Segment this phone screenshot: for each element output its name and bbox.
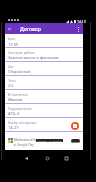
button[interactable]: Save: [71, 122, 79, 130]
staticText: АТЦ-3: [8, 111, 20, 116]
button[interactable]: Открыть: [71, 139, 80, 143]
button[interactable]: Исполнитель: [5, 90, 83, 104]
staticText: 14:12: [77, 19, 86, 24]
staticText: Цех: [8, 65, 14, 69]
button[interactable]: Back: [7, 26, 13, 32]
staticText: Часы: [8, 79, 16, 83]
staticText: Иванов: [8, 97, 23, 102]
staticText: 14-27: [8, 125, 19, 130]
button[interactable]: Home: [41, 152, 53, 164]
staticText: Номер инструкции: [8, 121, 37, 125]
staticText: Подразделение: [8, 107, 32, 111]
staticText: Реклама · Установить: [37, 139, 62, 142]
staticText: Сборочный: [8, 69, 31, 74]
staticText: Договор: [20, 26, 41, 33]
staticText: Описание работы: [8, 51, 35, 55]
button[interactable]: Часы: [5, 76, 83, 90]
staticText: 2.5: [8, 83, 14, 88]
button[interactable]: More options: [74, 25, 82, 33]
staticText: Google Play: [17, 143, 34, 147]
button[interactable]: Дата: [5, 35, 83, 48]
button[interactable]: Back: [20, 152, 32, 164]
button[interactable]: Описание работы: [5, 48, 83, 62]
staticText: Замена масла и фильтров: [8, 55, 59, 60]
staticText: Дата: [8, 37, 16, 41]
button[interactable]: Подразделение: [5, 104, 83, 118]
button[interactable]: Номер инструкции: [5, 118, 83, 132]
button[interactable]: Цех: [5, 62, 83, 76]
button[interactable]: Recents: [60, 152, 72, 164]
staticText: Мобильный банк: [14, 138, 41, 142]
button[interactable]: Реклама · Установить: [36, 139, 63, 142]
staticText: 13.05: [8, 42, 19, 47]
staticText: Исполнитель: [8, 93, 28, 97]
staticText: Открыть: [71, 140, 80, 143]
